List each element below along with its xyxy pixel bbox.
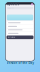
button[interactable] (7, 21, 33, 24)
button[interactable] (7, 31, 33, 35)
staticText: Version of the Day (6, 61, 33, 65)
staticText: Install now (8, 36, 15, 38)
button[interactable]: Install now (6, 35, 33, 39)
button[interactable] (7, 14, 33, 20)
staticText: Updates (7, 2, 19, 6)
button[interactable] (7, 24, 33, 28)
button[interactable]: Account (31, 3, 33, 5)
button[interactable] (7, 28, 33, 31)
